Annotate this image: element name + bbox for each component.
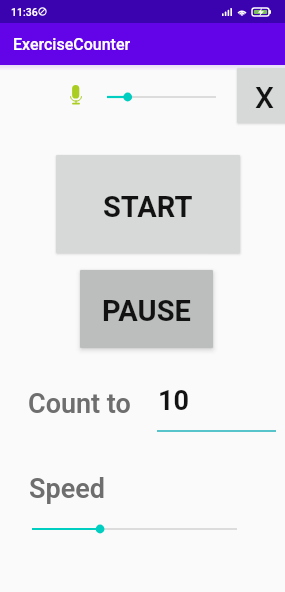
staticText: ExerciseCounter	[13, 35, 131, 54]
staticText: START	[103, 190, 193, 224]
staticText: 11:36	[11, 6, 38, 18]
button[interactable]: Microphone	[64, 79, 88, 111]
button[interactable]: START	[56, 155, 240, 253]
button[interactable]: PAUSE	[80, 270, 213, 348]
button[interactable]: Speed slider	[24, 519, 245, 539]
staticText: PAUSE	[102, 294, 191, 328]
staticText: Speed	[29, 473, 105, 505]
staticText: Count to	[28, 388, 131, 420]
staticText: X	[255, 80, 274, 115]
button[interactable]: Volume	[99, 87, 224, 107]
button[interactable]: 10	[157, 382, 276, 432]
button[interactable]: Close	[237, 68, 285, 123]
staticText: 10	[158, 385, 189, 417]
